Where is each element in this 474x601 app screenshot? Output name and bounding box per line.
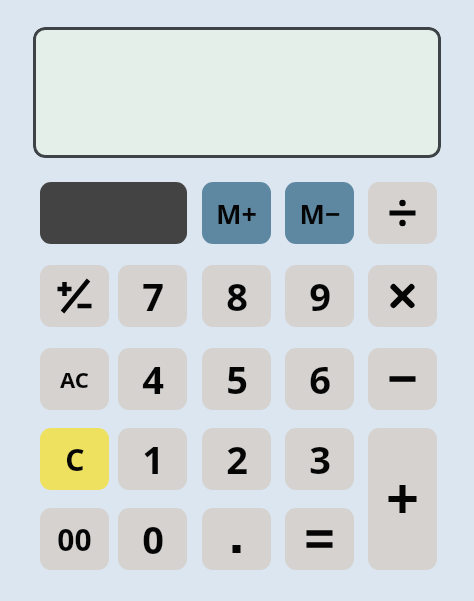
staticText: C <box>65 439 85 480</box>
button[interactable]: 1 <box>118 428 187 490</box>
button[interactable]: M− <box>285 182 354 244</box>
staticText: 5 <box>226 353 248 405</box>
staticText: M+ <box>216 195 257 232</box>
button[interactable]: M+ <box>202 182 271 244</box>
button[interactable]: 9 <box>285 265 354 327</box>
staticText: 00 <box>57 519 92 560</box>
button[interactable]: AC <box>40 348 109 410</box>
staticText: 7 <box>142 270 164 322</box>
button[interactable]: 5 <box>202 348 271 410</box>
staticText: 9 <box>309 270 331 322</box>
staticText: M− <box>299 195 341 232</box>
button[interactable]: Plus minus <box>40 265 109 327</box>
button[interactable]: 7 <box>118 265 187 327</box>
staticText: 8 <box>226 270 248 322</box>
button[interactable]: Minus <box>368 348 437 410</box>
staticText: AC <box>60 364 89 394</box>
button[interactable]: Plus <box>368 428 437 570</box>
staticText: 1 <box>142 433 164 485</box>
button[interactable]: 4 <box>118 348 187 410</box>
staticText: 6 <box>309 353 331 405</box>
button[interactable]: 3 <box>285 428 354 490</box>
staticText: 2 <box>226 433 248 485</box>
staticText: 0 <box>142 513 164 565</box>
button[interactable]: 00 <box>40 508 109 570</box>
button[interactable]: Divide <box>368 182 437 244</box>
staticText: 3 <box>309 433 331 485</box>
button[interactable]: 6 <box>285 348 354 410</box>
button[interactable]: 0 <box>118 508 187 570</box>
button[interactable]: C <box>40 428 109 490</box>
button[interactable]: Equals <box>285 508 354 570</box>
button[interactable]: 8 <box>202 265 271 327</box>
button[interactable]: Decimal point <box>202 508 271 570</box>
button[interactable]: Multiply <box>368 265 437 327</box>
button[interactable]: 2 <box>202 428 271 490</box>
button[interactable]: Blank key <box>40 182 187 244</box>
staticText: 4 <box>142 353 164 405</box>
